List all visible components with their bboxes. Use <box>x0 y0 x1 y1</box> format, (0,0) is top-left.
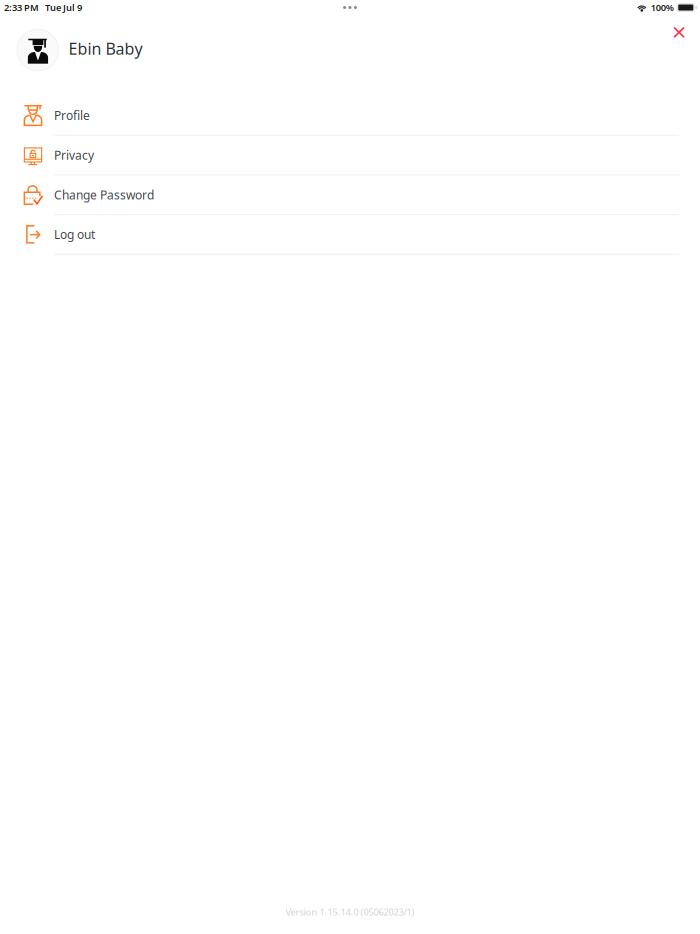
staticText: 2:33 PM <box>4 1 39 14</box>
staticText: 100% <box>651 1 674 14</box>
staticText: Tue Jul 9 <box>45 1 82 14</box>
staticText: Profile <box>54 107 90 123</box>
staticText: Version 1.15.14.0 (05062023/1) <box>285 906 414 918</box>
staticText: Ebin Baby <box>68 38 142 59</box>
staticText: Privacy <box>54 147 94 163</box>
staticText: Change Password <box>54 187 154 203</box>
staticText: Log out <box>54 226 95 242</box>
button[interactable]: Close <box>665 18 693 46</box>
button[interactable]: Privacy <box>0 136 700 175</box>
button[interactable]: Profile <box>0 96 700 136</box>
button[interactable]: Change Password <box>0 175 700 215</box>
button[interactable]: Log out <box>0 215 700 255</box>
